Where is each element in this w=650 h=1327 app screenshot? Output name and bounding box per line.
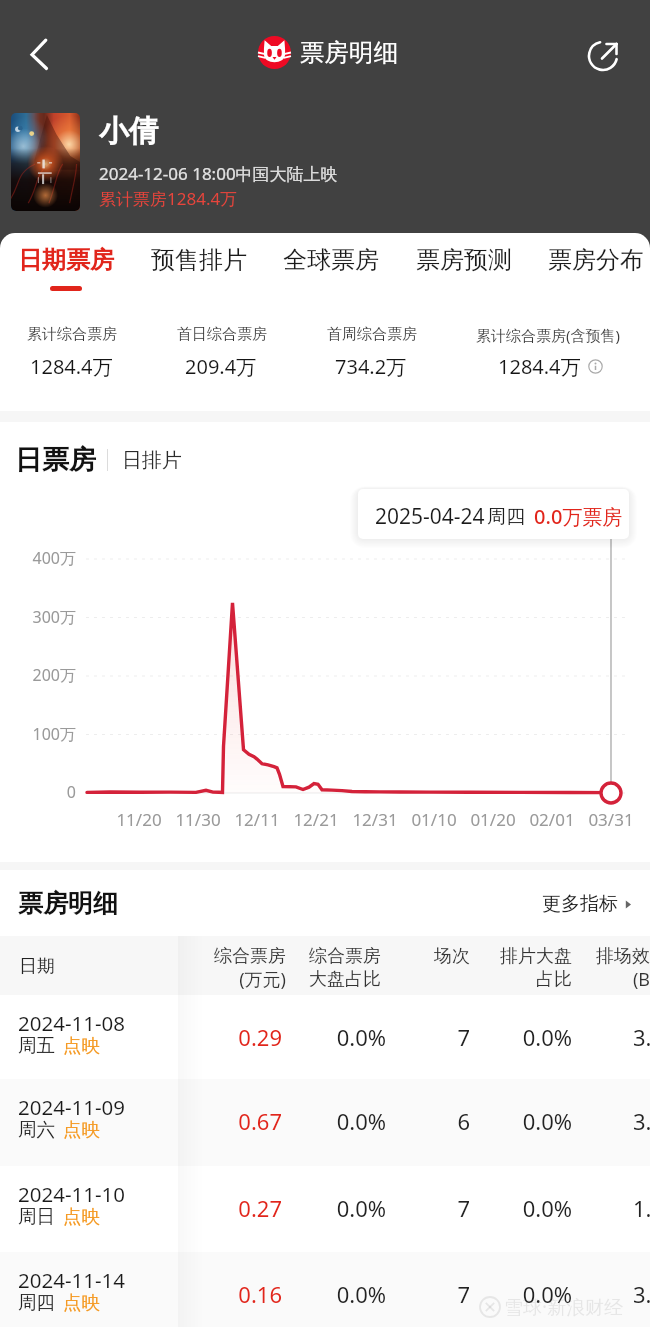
button[interactable]: 全球票房: [265, 233, 397, 298]
staticText: 点映: [63, 1034, 100, 1057]
staticText: 票房分布: [548, 245, 644, 275]
button[interactable]: [0, 1079, 650, 1166]
staticText: 累计综合票房: [27, 325, 117, 344]
staticText: 累计票房1284.4万: [99, 187, 238, 210]
staticText: 6: [310, 1106, 470, 1136]
staticText: 周六: [18, 1118, 55, 1141]
staticText: 票房明细: [300, 37, 398, 68]
staticText: 更多指标: [542, 892, 618, 916]
button[interactable]: 票房分布: [530, 233, 650, 298]
staticText: 2024-11-14: [18, 1266, 126, 1294]
staticText: 周四: [18, 1291, 55, 1314]
staticText: 0.0%: [412, 1193, 572, 1223]
staticText: 周四: [487, 505, 525, 529]
button[interactable]: [0, 1252, 650, 1327]
button[interactable]: [0, 1166, 650, 1252]
staticText: 0.0%: [226, 1193, 386, 1223]
staticText: 周五: [18, 1034, 55, 1057]
button[interactable]: Back: [10, 20, 70, 84]
staticText: 点映: [63, 1291, 100, 1314]
staticText: 0.0%: [226, 1106, 386, 1136]
staticText: 综合票房 (万元): [126, 945, 286, 991]
staticText: 12/31: [340, 808, 410, 831]
staticText: 7: [310, 1279, 470, 1309]
staticText: 累计综合票房(含预售): [476, 325, 621, 345]
staticText: 200万: [8, 664, 76, 686]
staticText: 11/20: [104, 808, 174, 831]
staticText: 场次: [310, 945, 470, 968]
staticText: 0.67: [122, 1106, 282, 1136]
staticText: 400万: [8, 547, 76, 569]
staticText: 日期: [19, 955, 55, 978]
staticText: 03/31: [576, 808, 646, 831]
staticText: 0.0%: [412, 1022, 572, 1052]
staticText: 日排片: [122, 448, 182, 473]
staticText: 首周综合票房: [327, 325, 417, 344]
staticText: 100万: [8, 723, 76, 745]
button[interactable]: 日期票房: [0, 233, 132, 298]
staticText: 734.2万: [335, 353, 407, 380]
staticText: 0.27: [122, 1193, 282, 1223]
staticText: 12/11: [222, 808, 292, 831]
staticText: 全球票房: [283, 245, 379, 275]
staticText: 小倩: [99, 113, 158, 150]
button[interactable]: [0, 995, 650, 1079]
staticText: 01/10: [399, 808, 469, 831]
button[interactable]: 更多指标: [542, 892, 633, 916]
staticText: 票房明细: [18, 888, 118, 919]
staticText: 周日: [18, 1205, 55, 1228]
staticText: 02/01: [517, 808, 587, 831]
staticText: 1284.4万: [30, 353, 113, 380]
staticText: 7: [310, 1022, 470, 1052]
staticText: 0.0%: [226, 1279, 386, 1309]
staticText: 0.0%: [412, 1106, 572, 1136]
staticText: 0: [8, 781, 76, 803]
staticText: 1284.4万: [498, 353, 581, 380]
staticText: 3.: [633, 1106, 650, 1136]
staticText: 票房预测: [416, 245, 512, 275]
staticText: 首日综合票房: [177, 325, 267, 344]
staticText: 日票房: [15, 443, 96, 477]
staticText: 点映: [63, 1118, 100, 1141]
staticText: 2024-11-10: [18, 1180, 126, 1208]
staticText: 0.16: [122, 1279, 282, 1309]
staticText: 3.: [633, 1279, 650, 1309]
staticText: 1.: [633, 1193, 650, 1223]
staticText: 排场效率 (B值: [508, 945, 650, 991]
button[interactable]: 票房预测: [398, 233, 530, 298]
staticText: 300万: [8, 606, 76, 628]
staticText: 2024-11-09: [18, 1093, 126, 1121]
staticText: 预售排片: [151, 245, 247, 275]
staticText: 综合票房 大盘占比: [221, 945, 381, 991]
staticText: 2024-12-06 18:00中国大陆上映: [99, 162, 338, 185]
staticText: 2024-11-08: [18, 1009, 126, 1037]
staticText: 0.0%: [226, 1022, 386, 1052]
staticText: 雪球·新浪财经: [504, 1294, 624, 1320]
staticText: 0.29: [122, 1022, 282, 1052]
staticText: 3.: [633, 1022, 650, 1052]
staticText: 2025-04-24: [375, 502, 485, 531]
staticText: 11/30: [163, 808, 233, 831]
staticText: 209.4万: [185, 353, 257, 380]
staticText: 日期票房: [18, 245, 114, 275]
staticText: 12/21: [281, 808, 351, 831]
staticText: 7: [310, 1193, 470, 1223]
staticText: 点映: [63, 1205, 100, 1228]
staticText: 0.0万票房: [534, 503, 623, 530]
button[interactable]: Share: [567, 18, 627, 86]
staticText: 01/20: [458, 808, 528, 831]
staticText: 排片大盘 占比: [412, 945, 572, 991]
staticText: 0.0%: [412, 1279, 572, 1309]
button[interactable]: 预售排片: [133, 233, 265, 298]
